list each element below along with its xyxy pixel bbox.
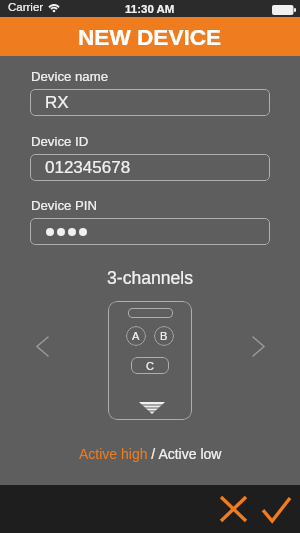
button[interactable]: RX <box>30 89 270 116</box>
button[interactable]: Previous device <box>25 329 59 363</box>
staticText: Active high / Active low <box>79 446 222 462</box>
button[interactable]: B <box>154 326 174 346</box>
staticText: 012345678 <box>45 158 131 177</box>
staticText: 3-channels <box>107 268 194 288</box>
button[interactable]: Cancel <box>213 489 253 529</box>
staticText: Device ID <box>31 134 89 149</box>
staticText: Device PIN <box>31 198 97 213</box>
staticText: Device name <box>31 69 108 84</box>
button[interactable]: Active high / Active low <box>73 443 228 465</box>
button[interactable] <box>30 218 270 245</box>
staticText: RX <box>45 93 69 112</box>
staticText: NEW DEVICE <box>78 25 222 50</box>
staticText: B <box>160 330 168 342</box>
staticText: C <box>146 360 154 372</box>
button[interactable]: C <box>131 357 169 374</box>
button[interactable]: 012345678 <box>30 154 270 181</box>
button[interactable]: Confirm <box>256 489 296 529</box>
staticText: 11:30 AM <box>125 3 175 16</box>
staticText: A <box>132 330 140 342</box>
button[interactable]: A <box>126 326 146 346</box>
button[interactable]: Next device <box>241 329 275 363</box>
staticText: Carrier <box>8 1 44 14</box>
